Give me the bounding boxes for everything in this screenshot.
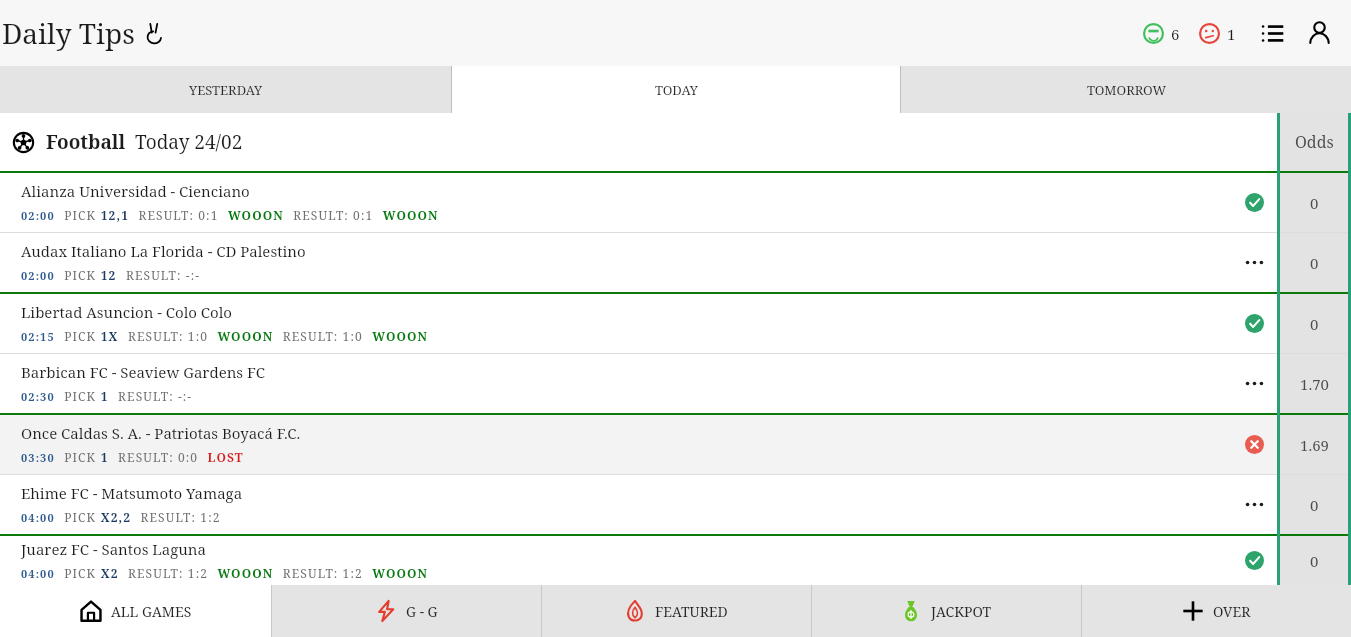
staticText: TOMORROW: [1087, 81, 1166, 99]
staticText: Libertad Asuncion - Colo Colo: [21, 302, 233, 322]
staticText: Ehime FC - Matsumoto Yamaga: [21, 483, 243, 503]
staticText: 0: [1310, 193, 1319, 213]
staticText: Once Caldas S. A. - Patriotas Boyacá F.C…: [21, 423, 301, 443]
staticText: 0: [1310, 495, 1319, 515]
staticText: TODAY: [655, 81, 698, 99]
button[interactable]: ALL GAMES: [0, 585, 271, 637]
staticText: 1.70: [1300, 374, 1329, 394]
staticText: 1: [1227, 24, 1236, 44]
staticText: JACKPOT: [931, 602, 992, 621]
button[interactable]: List view: [1253, 14, 1291, 52]
staticText: 04:00 PICK X2 RESULT: 1:2 WOOON RESULT: …: [21, 563, 429, 582]
staticText: Barbican FC - Seaview Gardens FC: [21, 362, 266, 382]
button[interactable]: TOMORROW: [901, 66, 1351, 113]
button[interactable]: FEATURED: [541, 585, 811, 637]
staticText: 02:15 PICK 1X RESULT: 1:0 WOOON RESULT: …: [21, 326, 429, 345]
staticText: 0: [1310, 551, 1319, 571]
staticText: Juarez FC - Santos Laguna: [21, 539, 206, 559]
staticText: 03:30 PICK 1 RESULT: 0:0 LOST: [21, 447, 244, 466]
staticText: 0: [1310, 314, 1319, 334]
button[interactable]: Barbican FC - Seaview Gardens FC: [0, 354, 1351, 413]
staticText: Daily Tips: [2, 14, 135, 52]
staticText: YESTERDAY: [189, 81, 263, 99]
staticText: 04:00 PICK X2,2 RESULT: 1:2: [21, 507, 221, 526]
button[interactable]: Once Caldas S. A. - Patriotas Boyacá F.C…: [0, 415, 1351, 474]
button[interactable]: 1: [1195, 22, 1239, 45]
staticText: Alianza Universidad - Cienciano: [21, 181, 250, 201]
staticText: 02:30 PICK 1 RESULT: -:-: [21, 386, 193, 405]
button[interactable]: Alianza Universidad - Cienciano: [0, 173, 1351, 232]
staticText: G - G: [406, 602, 438, 621]
staticText: 1.69: [1300, 435, 1329, 455]
button[interactable]: Audax Italiano La Florida - CD Palestino: [0, 233, 1351, 292]
button[interactable]: 6: [1139, 22, 1183, 45]
staticText: 0: [1310, 253, 1319, 273]
staticText: ALL GAMES: [111, 602, 192, 621]
staticText: OVER: [1213, 602, 1251, 621]
staticText: FEATURED: [655, 602, 728, 621]
button[interactable]: Ehime FC - Matsumoto Yamaga: [0, 475, 1351, 534]
staticText: Odds: [1295, 131, 1334, 153]
button[interactable]: TODAY: [451, 66, 901, 113]
button[interactable]: Profile: [1299, 13, 1339, 53]
staticText: Today 24/02: [135, 129, 243, 155]
staticText: 02:00 PICK 12 RESULT: -:-: [21, 265, 200, 284]
button[interactable]: OVER: [1081, 585, 1351, 637]
button[interactable]: Juarez FC - Santos Laguna: [0, 536, 1351, 585]
button[interactable]: JACKPOT: [811, 585, 1081, 637]
staticText: 02:00 PICK 12,1 RESULT: 0:1 WOOON RESULT…: [21, 205, 439, 224]
button[interactable]: G - G: [271, 585, 541, 637]
staticText: 6: [1171, 24, 1180, 44]
button[interactable]: Libertad Asuncion - Colo Colo: [0, 294, 1351, 353]
staticText: Audax Italiano La Florida - CD Palestino: [21, 241, 306, 261]
button[interactable]: YESTERDAY: [0, 66, 451, 113]
staticText: Football: [46, 129, 126, 155]
